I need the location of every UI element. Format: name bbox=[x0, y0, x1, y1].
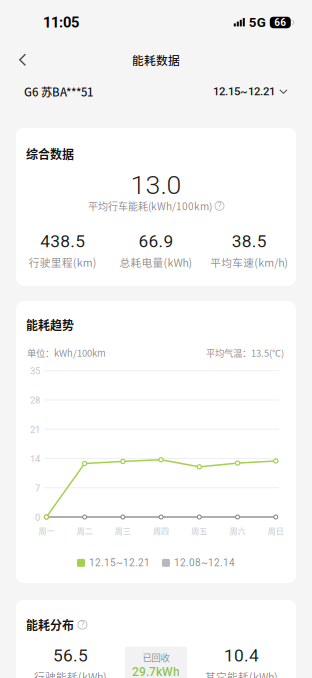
staticText: 其它能耗(kWh) bbox=[205, 669, 278, 678]
staticText: ? bbox=[80, 620, 84, 630]
staticText: 66.9 bbox=[138, 231, 173, 251]
staticText: 38.5 bbox=[232, 231, 267, 251]
staticText: 周六 bbox=[229, 525, 245, 537]
staticText: 11:05 bbox=[43, 14, 79, 31]
staticText: 12.08~12.14 bbox=[174, 557, 235, 569]
staticText: 14 bbox=[30, 453, 40, 464]
staticText: 周三 bbox=[115, 525, 131, 537]
staticText: 28 bbox=[30, 395, 40, 406]
staticText: 周二 bbox=[77, 525, 93, 537]
staticText: 7 bbox=[35, 483, 40, 494]
staticText: 行驶能耗(kWh) bbox=[34, 669, 107, 678]
staticText: 0 bbox=[35, 512, 40, 523]
staticText: 12.15~12.21 bbox=[89, 557, 150, 569]
staticText: 12.15~12.21 bbox=[213, 85, 275, 98]
staticText: 平均行车能耗(kWh/100km) bbox=[88, 199, 212, 213]
button[interactable]: 12.15~12.21 bbox=[213, 85, 288, 98]
staticText: 56.5 bbox=[53, 645, 88, 666]
staticText: 周四 bbox=[153, 525, 169, 537]
staticText: 10.4 bbox=[224, 645, 259, 666]
staticText: 综合数据 bbox=[26, 145, 74, 162]
staticText: 总耗电量(kWh) bbox=[119, 254, 192, 270]
staticText: 能耗数据 bbox=[132, 51, 180, 68]
staticText: 周五 bbox=[191, 525, 207, 537]
staticText: 单位：kWh/100km bbox=[27, 346, 106, 359]
staticText: 能耗分布 bbox=[26, 616, 74, 633]
staticText: 平均车速(km/h) bbox=[210, 254, 288, 270]
staticText: 438.5 bbox=[40, 231, 85, 251]
staticText: 周一 bbox=[38, 525, 54, 537]
staticText: 周日 bbox=[268, 525, 284, 537]
staticText: G6 苏BA***51 bbox=[24, 83, 93, 100]
staticText: 能耗趋势 bbox=[26, 316, 74, 333]
staticText: 行驶里程(km) bbox=[29, 254, 97, 270]
staticText: ? bbox=[217, 201, 221, 211]
button[interactable]: Back bbox=[7, 45, 38, 75]
staticText: 21 bbox=[30, 424, 40, 435]
staticText: 5G bbox=[249, 15, 266, 30]
staticText: 35 bbox=[30, 366, 40, 377]
staticText: 13.0 bbox=[130, 169, 181, 201]
staticText: 已回收 bbox=[142, 650, 169, 664]
staticText: 66 bbox=[274, 17, 286, 28]
staticText: 平均气温：13.5(°C) bbox=[206, 346, 284, 359]
staticText: 29.7kWh bbox=[132, 665, 180, 678]
